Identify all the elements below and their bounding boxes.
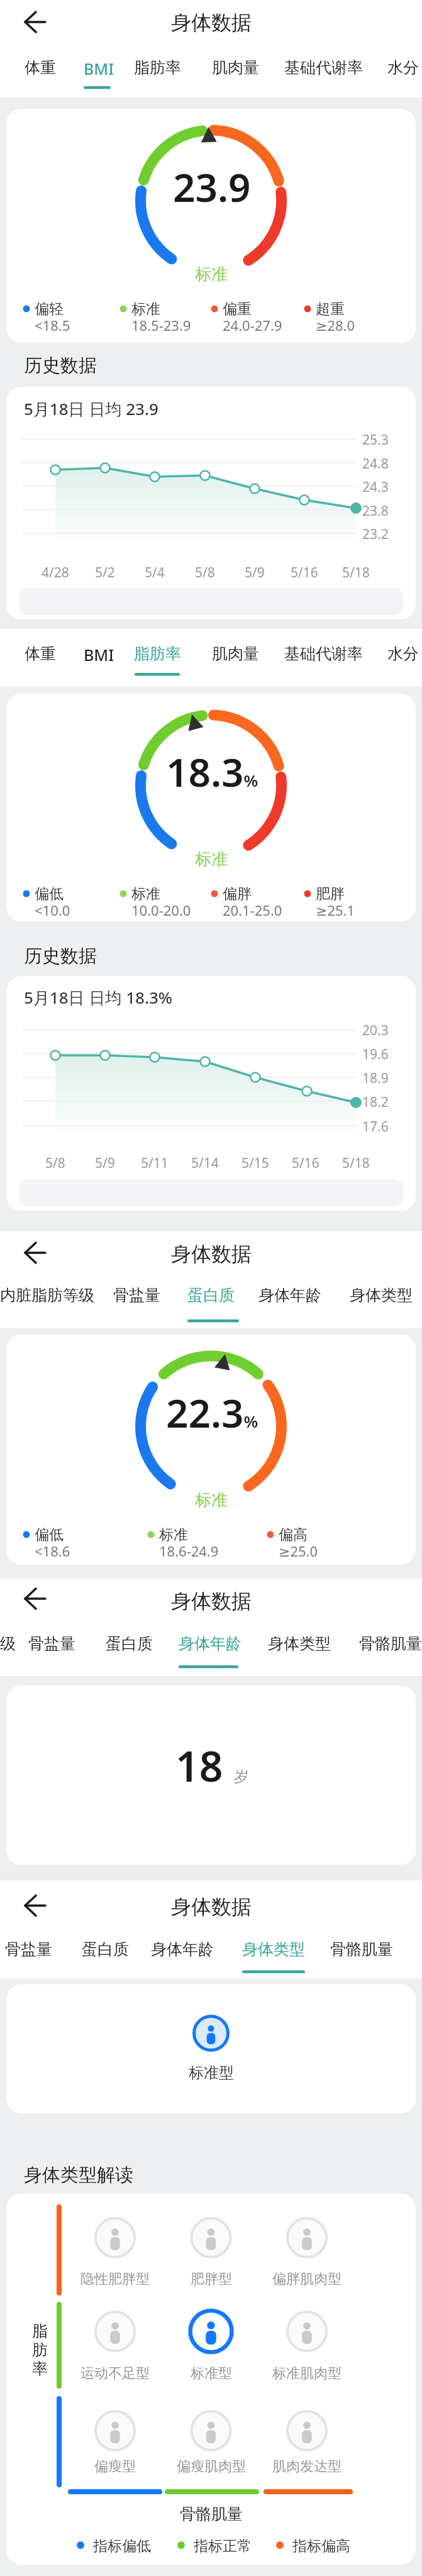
- staticText: 4/28: [42, 563, 69, 582]
- button[interactable]: [263, 1626, 335, 1664]
- staticText: 指标偏低: [93, 2537, 151, 2555]
- staticText: 5月18日 日均 18.3%: [24, 986, 172, 1009]
- staticText: ≥25.1: [316, 901, 355, 919]
- staticText: 标准: [195, 264, 228, 285]
- staticText: 身体类型: [350, 1285, 413, 1305]
- button[interactable]: [182, 1278, 245, 1316]
- staticText: 身体年龄: [179, 1634, 242, 1653]
- button[interactable]: [19, 50, 63, 88]
- staticText: 19.6: [362, 1045, 389, 1063]
- staticText: 偏高: [279, 1526, 308, 1544]
- button[interactable]: [325, 1932, 401, 1970]
- staticText: 18 岁: [175, 1737, 249, 1794]
- staticText: 身体数据: [171, 1589, 252, 1614]
- staticText: 骨骼肌量: [330, 1940, 393, 1959]
- staticText: 体重: [25, 644, 56, 663]
- staticText: 身体数据: [171, 10, 252, 35]
- button[interactable]: [204, 636, 267, 674]
- staticText: 偏胖肌肉型: [272, 2270, 341, 2288]
- button[interactable]: [253, 1278, 326, 1316]
- staticText: 18.9: [362, 1069, 389, 1087]
- staticText: 10.0-20.0: [131, 901, 191, 919]
- button[interactable]: [77, 1932, 140, 1970]
- staticText: 超重: [316, 300, 345, 318]
- button[interactable]: [174, 1626, 246, 1664]
- staticText: 脂: [32, 2321, 48, 2341]
- staticText: 骨盐量: [28, 1634, 75, 1653]
- button[interactable]: [345, 1278, 417, 1316]
- button[interactable]: [354, 1626, 422, 1664]
- staticText: 指标偏高: [292, 2537, 350, 2555]
- button[interactable]: [0, 1626, 19, 1664]
- staticText: <18.6: [35, 1541, 70, 1560]
- button[interactable]: [108, 1278, 171, 1316]
- staticText: 脂肪率: [134, 644, 181, 663]
- staticText: 18.2: [362, 1093, 389, 1111]
- staticText: 偏瘦肌肉型: [177, 2458, 246, 2475]
- staticText: 偏胖: [223, 885, 252, 903]
- staticText: 18.5-23.9: [131, 316, 191, 335]
- staticText: 18.6-24.9: [159, 1541, 219, 1560]
- staticText: 历史数据: [24, 945, 97, 968]
- staticText: <18.5: [35, 316, 70, 335]
- staticText: 身体类型: [242, 1940, 305, 1959]
- button[interactable]: [0, 1932, 66, 1970]
- staticText: 标准: [195, 1490, 228, 1511]
- staticText: 20.3: [362, 1021, 389, 1040]
- staticText: 18.3%: [166, 745, 258, 798]
- button[interactable]: [23, 1626, 86, 1664]
- staticText: 身体年龄: [151, 1940, 214, 1959]
- button[interactable]: [380, 50, 422, 88]
- button[interactable]: [79, 636, 116, 674]
- button[interactable]: [16, 1237, 53, 1269]
- button[interactable]: [19, 636, 63, 674]
- staticText: 5/11: [141, 1154, 169, 1172]
- staticText: 身体数据: [171, 1894, 252, 1919]
- staticText: ≥25.0: [279, 1541, 318, 1560]
- staticText: 肌肉量: [212, 58, 259, 77]
- staticText: 历史数据: [24, 354, 97, 377]
- staticText: 17.6: [362, 1118, 389, 1136]
- button[interactable]: [16, 1583, 53, 1614]
- button[interactable]: [129, 50, 186, 88]
- staticText: 标准: [131, 885, 160, 903]
- staticText: 5/8: [195, 563, 215, 582]
- staticText: 肌肉量: [212, 644, 259, 663]
- button[interactable]: [280, 50, 374, 88]
- staticText: 偏重: [223, 300, 252, 318]
- button[interactable]: [237, 1932, 309, 1970]
- staticText: 肪: [32, 2340, 48, 2360]
- button[interactable]: [16, 1890, 53, 1921]
- button[interactable]: [16, 6, 53, 38]
- button[interactable]: [0, 1278, 101, 1316]
- button[interactable]: [380, 636, 422, 674]
- button[interactable]: [146, 1932, 218, 1970]
- staticText: 骨骼肌量: [180, 2504, 243, 2524]
- staticText: 身体类型解读: [24, 2163, 133, 2187]
- button[interactable]: [79, 50, 116, 88]
- staticText: 5月18日 日均 23.9: [24, 397, 158, 420]
- staticText: ≥28.0: [316, 316, 355, 335]
- staticText: 5/14: [191, 1154, 219, 1172]
- staticText: 偏瘦型: [94, 2458, 136, 2475]
- staticText: 5/9: [95, 1154, 115, 1172]
- staticText: 23.9: [173, 160, 251, 213]
- staticText: 标准型: [189, 2063, 234, 2082]
- staticText: 脂肪率: [134, 58, 181, 77]
- staticText: 5/15: [242, 1154, 269, 1172]
- staticText: 级: [0, 1634, 16, 1653]
- button[interactable]: [101, 1626, 164, 1664]
- staticText: 25.3: [362, 431, 389, 449]
- staticText: 体重: [25, 58, 56, 77]
- button[interactable]: [204, 50, 267, 88]
- staticText: 骨盐量: [113, 1285, 160, 1305]
- staticText: 24.3: [362, 478, 389, 496]
- staticText: 蛋白质: [82, 1940, 129, 1959]
- staticText: 基础代谢率: [284, 58, 363, 77]
- staticText: 水分: [387, 58, 419, 77]
- button[interactable]: [280, 636, 374, 674]
- staticText: 20.1-25.0: [223, 901, 282, 919]
- staticText: 基础代谢率: [284, 644, 363, 663]
- staticText: 5/18: [342, 1154, 370, 1172]
- button[interactable]: [129, 636, 186, 674]
